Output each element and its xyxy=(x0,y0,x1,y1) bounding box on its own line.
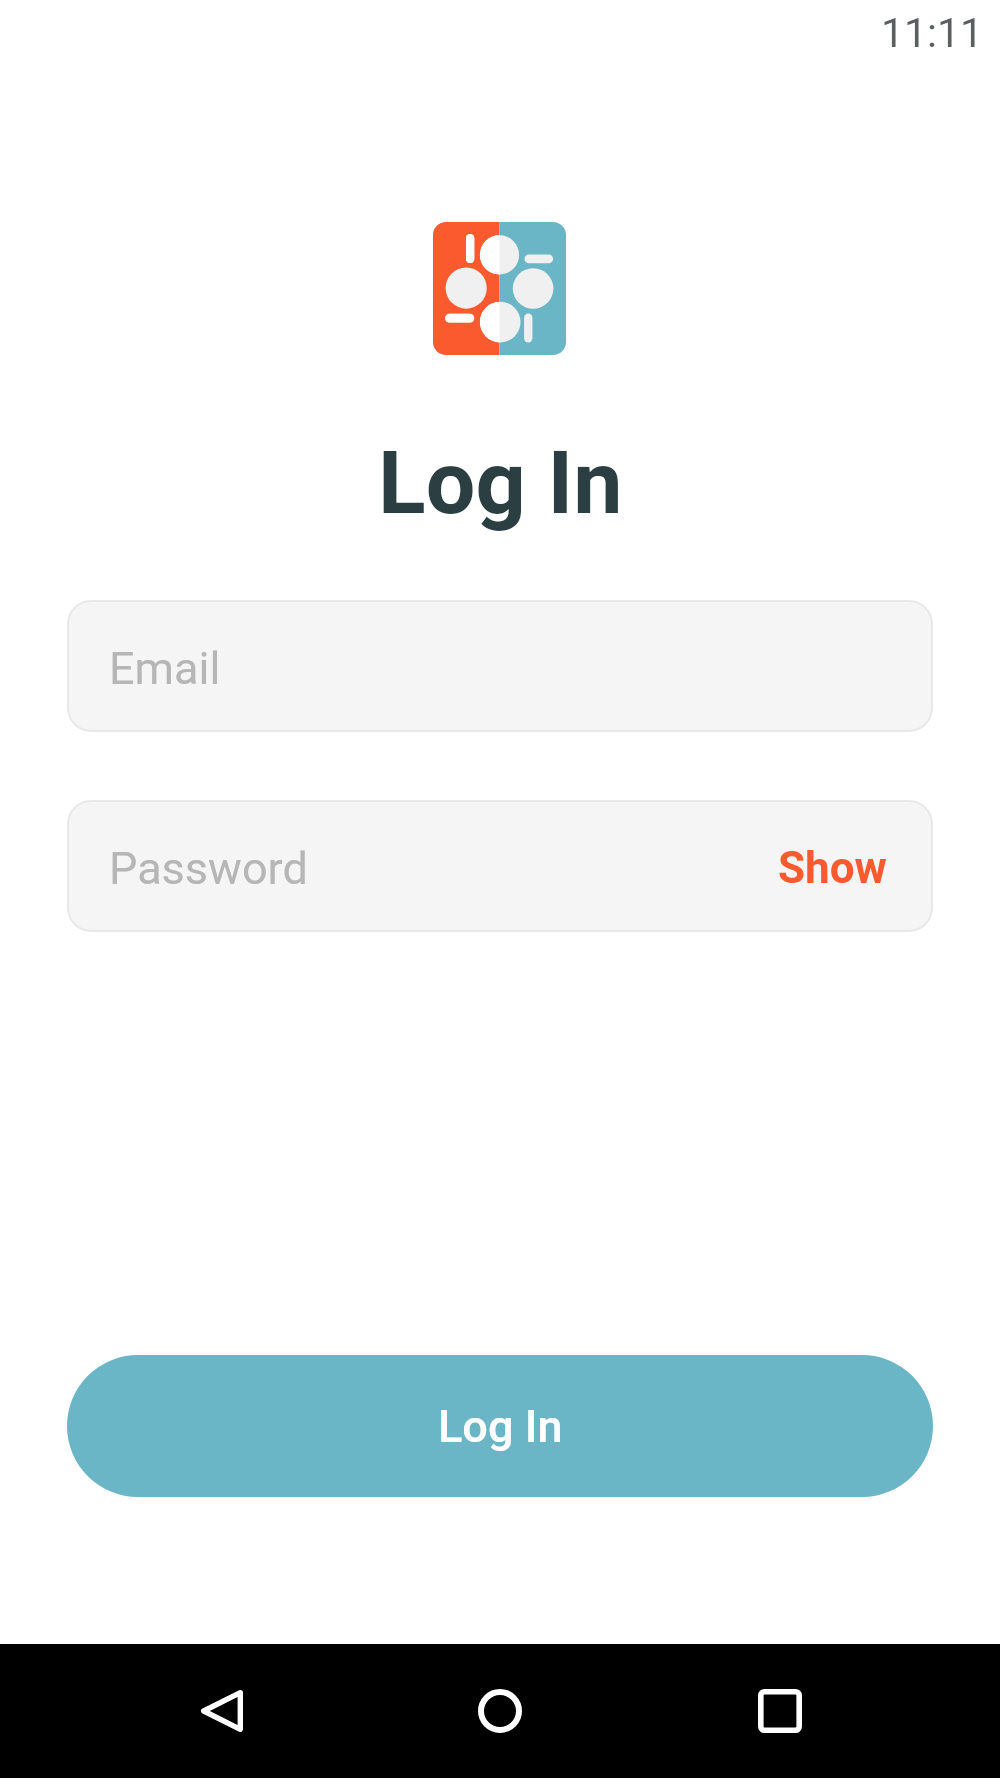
staticText: 11:11 xyxy=(881,9,984,57)
staticText: Log In xyxy=(378,431,623,534)
button[interactable]: Recent apps xyxy=(713,1644,847,1778)
staticText: Email xyxy=(109,642,221,695)
button[interactable]: Home xyxy=(433,1644,567,1778)
button[interactable]: Back xyxy=(155,1644,289,1778)
staticText: Show xyxy=(778,842,887,894)
staticText: Log In xyxy=(438,1400,563,1453)
staticText: Password xyxy=(109,842,778,895)
button[interactable]: Log In xyxy=(67,1355,933,1497)
button[interactable]: Show xyxy=(778,842,887,894)
button[interactable]: Email xyxy=(67,600,933,732)
